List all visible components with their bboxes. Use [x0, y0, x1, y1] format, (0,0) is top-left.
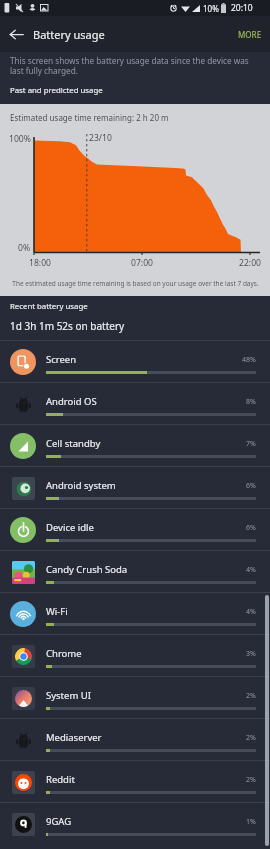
button[interactable]: Chrome: [0, 634, 270, 676]
button[interactable]: Back: [0, 16, 33, 52]
staticText: 48%: [242, 355, 256, 365]
staticText: The estimated usage time remaining is ba…: [12, 279, 259, 288]
staticText: 2%: [246, 691, 256, 701]
staticText: 6%: [246, 481, 256, 491]
staticText: Recent battery usage: [10, 301, 88, 312]
staticText: Candy Crush Soda: [46, 563, 128, 576]
button[interactable]: Mediaserver: [0, 718, 270, 760]
button[interactable]: Cell standby: [0, 424, 270, 466]
staticText: MORE: [238, 29, 262, 40]
staticText: Screen: [46, 353, 77, 366]
staticText: 4%: [246, 607, 256, 617]
staticText: 1d 3h 1m 52s on battery: [10, 319, 125, 333]
staticText: 10%: [203, 3, 219, 14]
button[interactable]: Screen: [0, 340, 270, 382]
staticText: Cell standby: [46, 437, 101, 450]
staticText: 07:00: [131, 257, 153, 269]
staticText: Past and predicted usage: [10, 85, 103, 96]
staticText: 18:00: [29, 257, 51, 269]
staticText: System UI: [46, 689, 91, 702]
button[interactable]: System UI: [0, 676, 270, 718]
button[interactable]: Candy Crush Soda: [0, 550, 270, 592]
staticText: 3%: [246, 649, 256, 659]
staticText: 8%: [246, 397, 256, 407]
staticText: Mediaserver: [46, 731, 102, 744]
staticText: This screen shows the battery usage data…: [10, 55, 256, 77]
staticText: 0%: [18, 242, 31, 254]
button[interactable]: 9GAG: [0, 802, 270, 844]
staticText: 9GAG: [46, 815, 72, 828]
button[interactable]: Device idle: [0, 508, 270, 550]
staticText: 2%: [246, 775, 256, 785]
button[interactable]: Android system: [0, 466, 270, 508]
staticText: 20:10: [231, 2, 253, 14]
staticText: 100%: [9, 133, 31, 145]
staticText: 7%: [246, 439, 256, 449]
staticText: Device idle: [46, 521, 94, 534]
staticText: 22:00: [239, 257, 261, 269]
staticText: Chrome: [46, 647, 82, 660]
staticText: 23/10: [89, 132, 112, 144]
staticText: 1%: [246, 817, 256, 827]
staticText: Estimated usage time remaining: 2 h 20 m: [10, 112, 169, 123]
button[interactable]: Android OS: [0, 382, 270, 424]
staticText: Android OS: [46, 395, 97, 408]
staticText: 6%: [246, 523, 256, 533]
button[interactable]: Wi-Fi: [0, 592, 270, 634]
staticText: Wi-Fi: [46, 605, 68, 618]
button[interactable]: MORE: [230, 16, 270, 52]
staticText: 4%: [246, 565, 256, 575]
staticText: Reddit: [46, 773, 75, 786]
staticText: Battery usage: [33, 27, 105, 42]
staticText: Android system: [46, 479, 116, 492]
button[interactable]: Reddit: [0, 760, 270, 802]
staticText: 2%: [246, 733, 256, 743]
